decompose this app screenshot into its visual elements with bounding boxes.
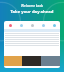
staticText: Take your day ahead — [0, 9, 64, 15]
staticText: Welcome back — [0, 4, 64, 8]
